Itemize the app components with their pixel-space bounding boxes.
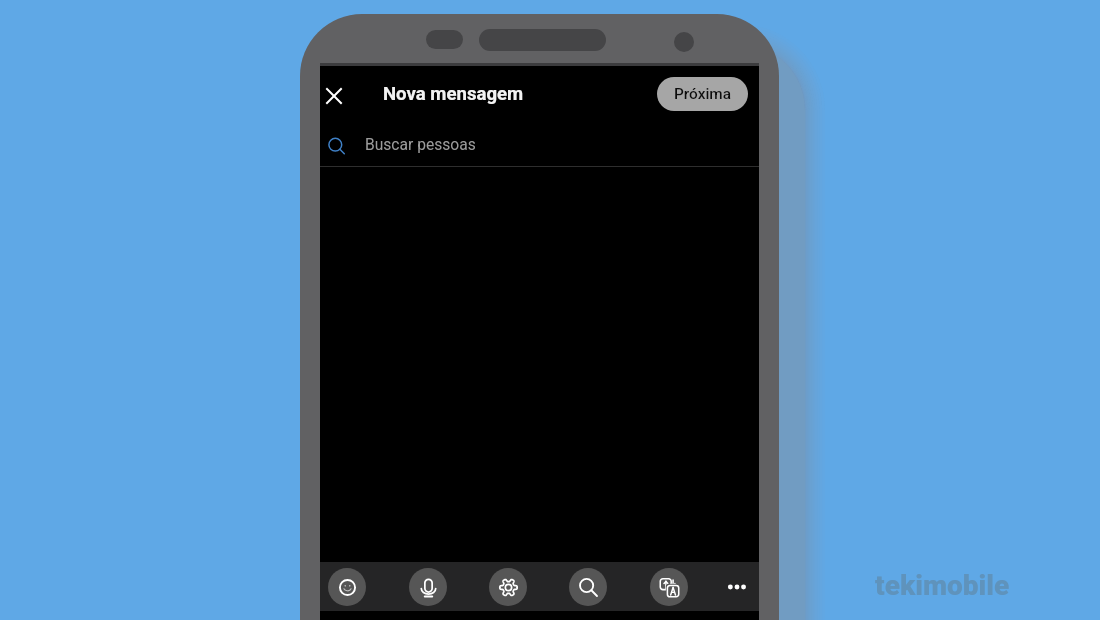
button[interactable]: More options <box>718 568 756 606</box>
button[interactable]: Search people <box>315 124 359 168</box>
staticText: Próxima <box>674 85 732 103</box>
button[interactable]: Próxima <box>657 77 748 111</box>
staticText: tekimobile <box>875 569 1010 602</box>
button[interactable]: Translate <box>650 568 688 606</box>
button[interactable]: Search <box>569 568 607 606</box>
button[interactable]: Emoji <box>328 568 366 606</box>
staticText: Buscar pessoas <box>365 136 476 154</box>
staticText: Nova mensagem <box>383 83 524 105</box>
button[interactable]: Close <box>312 74 356 118</box>
button[interactable]: Voice input <box>409 568 447 606</box>
button[interactable]: Keyboard settings <box>489 568 527 606</box>
